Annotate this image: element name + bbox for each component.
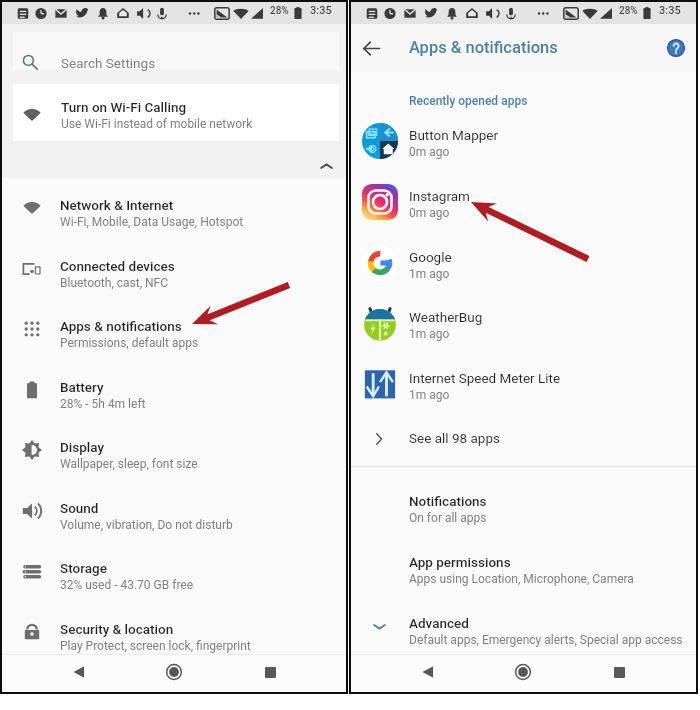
- staticText: 28%: [270, 5, 289, 17]
- staticText: Play Protect, screen lock, fingerprint: [60, 639, 251, 653]
- button[interactable]: Notifications: [351, 475, 696, 536]
- staticText: Recently opened apps: [409, 94, 528, 108]
- staticText: 1m ago: [409, 388, 450, 402]
- staticText: 0m ago: [409, 145, 450, 159]
- button[interactable]: Network & Internet: [2, 178, 346, 238]
- button[interactable]: Navigate up: [359, 36, 383, 60]
- button[interactable]: Recent apps: [599, 653, 639, 691]
- button[interactable]: Advanced: [351, 597, 696, 657]
- staticText: Permissions, default apps: [60, 336, 199, 350]
- button[interactable]: Back: [408, 653, 448, 691]
- staticText: Turn on Wi-Fi Calling: [61, 99, 187, 115]
- staticText: Display: [60, 439, 105, 455]
- button[interactable]: Battery: [2, 360, 346, 420]
- button[interactable]: Help: [664, 36, 688, 60]
- staticText: 1m ago: [409, 327, 450, 341]
- button[interactable]: Home: [154, 653, 194, 691]
- button[interactable]: Internet Speed Meter Lite: [351, 355, 696, 416]
- staticText: 0m ago: [409, 206, 450, 220]
- button[interactable]: Search Settings: [13, 32, 339, 70]
- staticText: Network & Internet: [60, 197, 174, 213]
- staticText: Apps & notifications: [409, 38, 558, 57]
- staticText: 28%: [619, 5, 638, 17]
- staticText: Sound: [60, 500, 99, 516]
- staticText: Security & location: [60, 621, 174, 637]
- button[interactable]: Security & location: [2, 602, 346, 662]
- staticText: Default apps, Emergency alerts, Special …: [409, 633, 683, 647]
- button[interactable]: Display: [2, 420, 346, 480]
- button[interactable]: See all 98 apps: [351, 416, 696, 467]
- staticText: Battery: [60, 379, 104, 395]
- button[interactable]: Sound: [2, 481, 346, 541]
- staticText: Bluetooth, cast, NFC: [60, 276, 169, 290]
- staticText: Connected devices: [60, 258, 175, 274]
- staticText: Wallpaper, sleep, font size: [60, 457, 198, 471]
- button[interactable]: App permissions: [351, 536, 696, 597]
- staticText: 3:35: [659, 4, 681, 17]
- staticText: Notifications: [409, 493, 487, 509]
- button[interactable]: Button Mapper: [351, 112, 696, 173]
- button[interactable]: Back: [59, 653, 99, 691]
- button[interactable]: Connected devices: [2, 239, 346, 299]
- staticText: Volume, vibration, Do not disturb: [60, 518, 233, 532]
- staticText: Button Mapper: [409, 127, 499, 143]
- button[interactable]: WeatherBug: [351, 294, 696, 355]
- button[interactable]: Home: [503, 653, 543, 691]
- staticText: Instagram: [409, 188, 470, 204]
- button[interactable]: Storage: [2, 541, 346, 601]
- staticText: Wi-Fi, Mobile, Data Usage, Hotspot: [60, 215, 244, 229]
- button[interactable]: Recent apps: [250, 653, 290, 691]
- staticText: WeatherBug: [409, 309, 483, 325]
- staticText: Storage: [60, 560, 107, 576]
- staticText: Google: [409, 249, 452, 265]
- staticText: 28% - 5h 4m left: [60, 397, 146, 411]
- staticText: App permissions: [409, 554, 511, 570]
- button[interactable]: Collapse suggestions: [312, 152, 340, 180]
- staticText: 3:35: [310, 4, 332, 17]
- staticText: Internet Speed Meter Lite: [409, 370, 561, 386]
- staticText: 32% used - 43.70 GB free: [60, 578, 194, 592]
- button[interactable]: Apps & notifications: [2, 299, 346, 359]
- staticText: Use Wi-Fi instead of mobile network: [61, 117, 253, 131]
- staticText: See all 98 apps: [409, 430, 500, 446]
- staticText: 1m ago: [409, 267, 450, 281]
- staticText: On for all apps: [409, 511, 487, 525]
- button[interactable]: Instagram: [351, 173, 696, 234]
- staticText: Apps using Location, Microphone, Camera: [409, 572, 634, 586]
- staticText: Apps & notifications: [60, 318, 182, 334]
- button[interactable]: Turn on Wi-Fi Calling: [13, 84, 339, 141]
- button[interactable]: Google: [351, 234, 696, 295]
- staticText: Advanced: [409, 615, 469, 631]
- staticText: Search Settings: [61, 55, 156, 71]
